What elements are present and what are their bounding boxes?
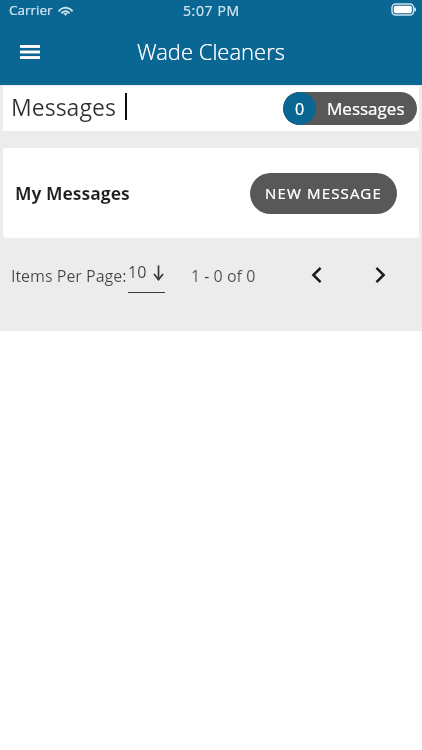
staticText: Messages bbox=[11, 91, 116, 122]
staticText: NEW MESSAGE bbox=[265, 183, 382, 203]
button[interactable]: 0 bbox=[283, 92, 417, 125]
staticText: 1 - 0 of 0 bbox=[191, 265, 256, 287]
button[interactable]: NEW MESSAGE bbox=[250, 173, 397, 214]
staticText: Messages bbox=[327, 97, 405, 120]
staticText: 10 bbox=[128, 261, 147, 283]
button[interactable]: Previous page bbox=[300, 259, 332, 291]
button[interactable]: Items per page: 10 bbox=[128, 256, 165, 296]
button[interactable]: Next page bbox=[364, 259, 396, 291]
staticText: Wade Cleaners bbox=[137, 36, 285, 66]
staticText: My Messages bbox=[15, 181, 130, 205]
staticText: 0 bbox=[295, 98, 305, 120]
button[interactable]: Open navigation menu bbox=[10, 32, 50, 72]
staticText: Carrier bbox=[9, 1, 53, 19]
staticText: 5:07 PM bbox=[183, 1, 240, 20]
staticText: Items Per Page: bbox=[11, 265, 127, 287]
